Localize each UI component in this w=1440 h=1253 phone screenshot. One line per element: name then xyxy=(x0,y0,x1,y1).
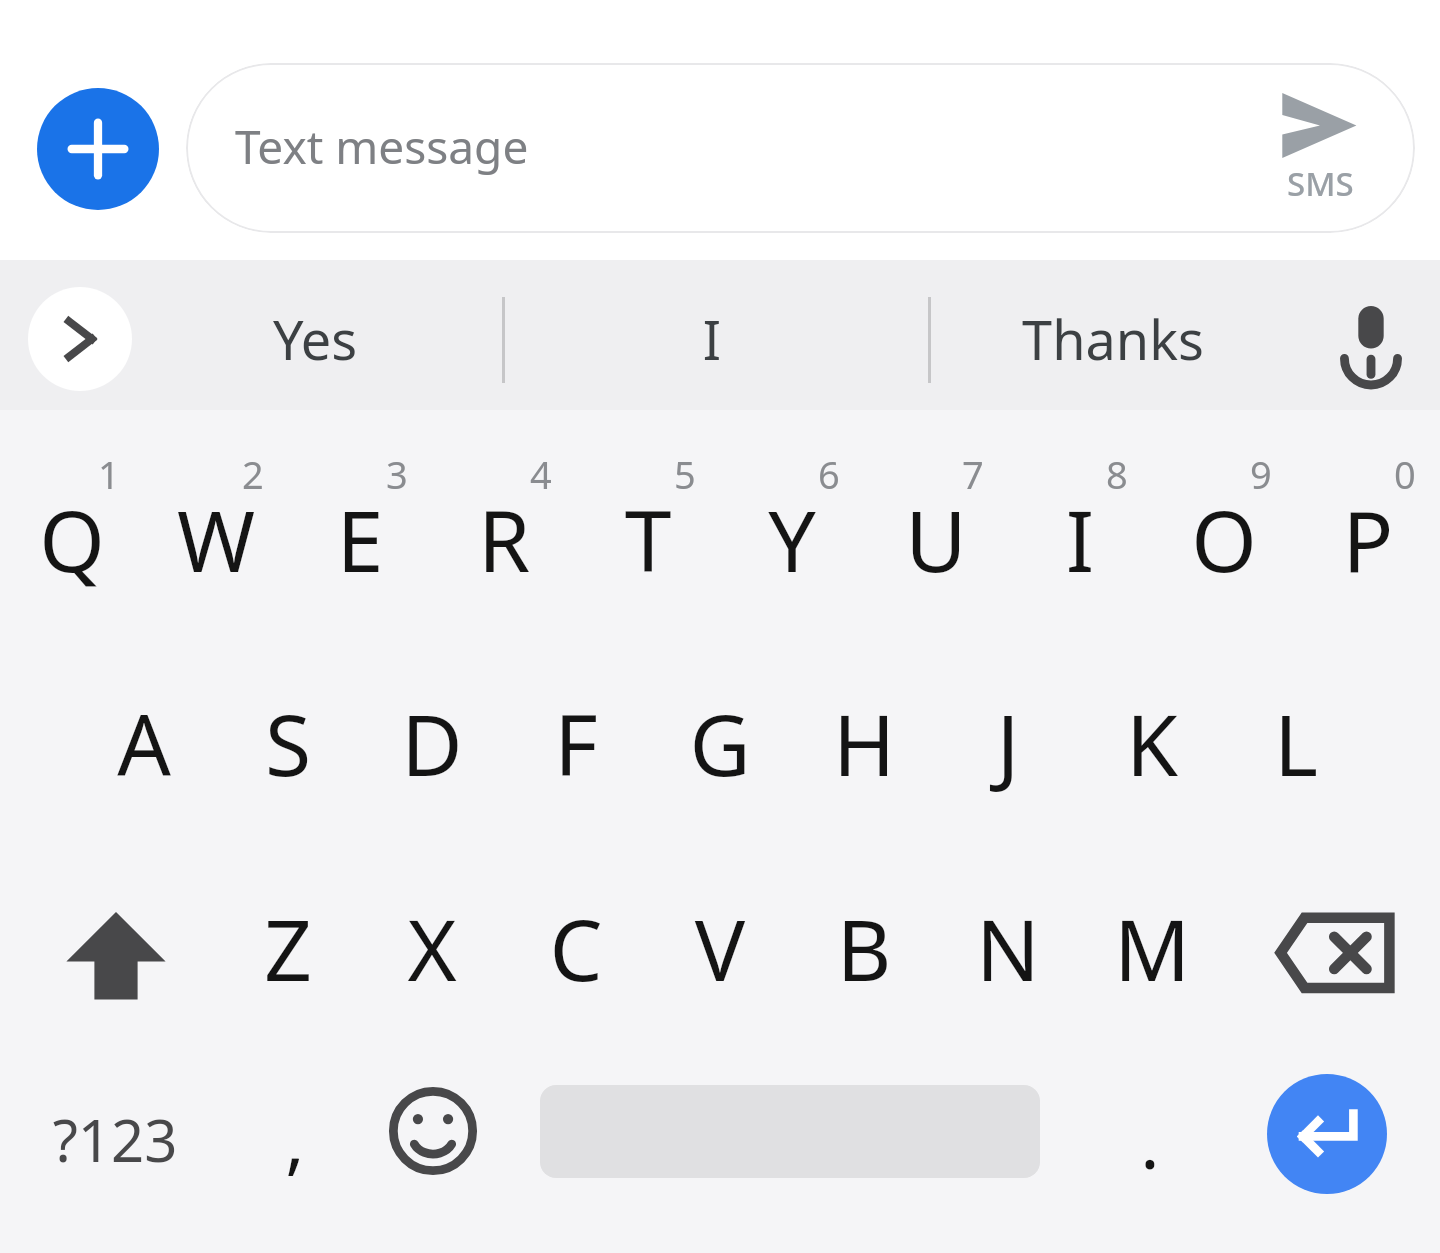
button[interactable]: Yes xyxy=(155,260,475,410)
button[interactable]: Send SMS xyxy=(1255,80,1385,210)
staticText: R xyxy=(432,482,576,596)
button[interactable]: E xyxy=(288,430,432,630)
button[interactable]: Text message xyxy=(186,63,1415,233)
staticText: D xyxy=(360,686,504,800)
staticText: Z xyxy=(216,891,360,1005)
button[interactable]: Shift xyxy=(36,855,196,1045)
staticText: SMS xyxy=(1287,161,1354,206)
button[interactable]: F xyxy=(504,650,648,840)
staticText: 8 xyxy=(1106,448,1128,500)
button[interactable]: Emoji xyxy=(372,1070,494,1192)
button[interactable]: C xyxy=(504,855,648,1045)
staticText: 0 xyxy=(1394,448,1416,500)
button[interactable]: , xyxy=(230,1062,360,1222)
staticText: 5 xyxy=(674,448,696,500)
button[interactable]: A xyxy=(72,650,216,840)
staticText: 6 xyxy=(818,448,840,500)
staticText: 3 xyxy=(386,448,408,500)
button[interactable]: G xyxy=(648,650,792,840)
staticText: K xyxy=(1080,686,1224,800)
button[interactable]: N xyxy=(936,855,1080,1045)
staticText: Y xyxy=(720,482,864,596)
button[interactable]: Z xyxy=(216,855,360,1045)
button[interactable]: Thanks xyxy=(953,260,1273,410)
button[interactable]: D xyxy=(360,650,504,840)
staticText: G xyxy=(648,686,792,800)
button[interactable]: ?123 xyxy=(20,1062,210,1222)
button[interactable]: I xyxy=(552,260,872,410)
staticText: B xyxy=(792,891,936,1005)
staticText: C xyxy=(504,891,648,1005)
staticText: H xyxy=(792,686,936,800)
staticText: 4 xyxy=(530,448,552,500)
staticText: E xyxy=(288,482,432,596)
staticText: X xyxy=(360,891,504,1005)
staticText: I xyxy=(552,302,872,376)
button[interactable]: M xyxy=(1080,855,1224,1045)
staticText: J xyxy=(936,686,1080,800)
button[interactable]: P xyxy=(1296,430,1440,630)
staticText: N xyxy=(936,891,1080,1005)
staticText: 2 xyxy=(242,448,264,500)
staticText: Yes xyxy=(155,302,475,376)
staticText: P xyxy=(1296,482,1440,596)
staticText: L xyxy=(1224,686,1368,800)
staticText: , xyxy=(230,1090,360,1188)
staticText: Thanks xyxy=(953,302,1273,376)
staticText: M xyxy=(1080,891,1224,1005)
staticText: V xyxy=(648,891,792,1005)
staticText: S xyxy=(216,686,360,800)
button[interactable]: V xyxy=(648,855,792,1045)
button[interactable]: Attach xyxy=(37,88,159,210)
button[interactable]: T xyxy=(576,430,720,630)
staticText: 1 xyxy=(98,448,120,500)
staticText: . xyxy=(1090,1092,1210,1190)
button[interactable]: H xyxy=(792,650,936,840)
staticText: I xyxy=(1008,482,1152,596)
button[interactable]: R xyxy=(432,430,576,630)
staticText: A xyxy=(72,686,216,800)
button[interactable]: Q xyxy=(0,430,144,630)
staticText: F xyxy=(504,686,648,800)
staticText: U xyxy=(864,482,1008,596)
button[interactable]: Backspace xyxy=(1250,855,1420,1045)
staticText: 9 xyxy=(1250,448,1272,500)
staticText: Text message xyxy=(235,115,529,178)
button[interactable]: Y xyxy=(720,430,864,630)
staticText: T xyxy=(576,482,720,596)
button[interactable]: More suggestions xyxy=(28,287,132,391)
button[interactable]: X xyxy=(360,855,504,1045)
button[interactable]: W xyxy=(144,430,288,630)
button[interactable]: I xyxy=(1008,430,1152,630)
button[interactable]: Voice input xyxy=(1312,280,1430,398)
staticText: Q xyxy=(0,482,144,596)
staticText: ?123 xyxy=(20,1100,210,1179)
staticText: W xyxy=(144,482,288,596)
staticText: 7 xyxy=(962,448,984,500)
button[interactable]: S xyxy=(216,650,360,840)
button[interactable]: L xyxy=(1224,650,1368,840)
button[interactable]: O xyxy=(1152,430,1296,630)
button[interactable]: Enter xyxy=(1267,1074,1387,1194)
button[interactable]: J xyxy=(936,650,1080,840)
staticText: O xyxy=(1152,482,1296,596)
button[interactable]: B xyxy=(792,855,936,1045)
button[interactable]: U xyxy=(864,430,1008,630)
button[interactable]: . xyxy=(1090,1062,1210,1222)
button[interactable]: K xyxy=(1080,650,1224,840)
